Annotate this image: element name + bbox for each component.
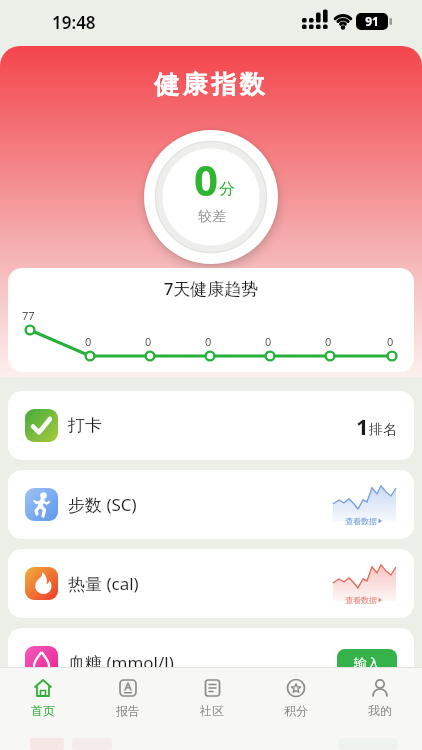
button[interactable]: 步数 (SC) xyxy=(8,470,414,539)
staticText: 0 xyxy=(145,334,152,349)
staticText: 19:48 xyxy=(52,11,96,34)
staticText: 打卡 xyxy=(68,415,102,436)
staticText: 查看数据 xyxy=(345,516,377,526)
button[interactable]: 输入 xyxy=(337,649,397,676)
staticText: 分 xyxy=(219,179,235,199)
staticText: 91 xyxy=(356,13,388,29)
button[interactable]: 热量 (cal) xyxy=(8,549,414,618)
staticText: 输入 xyxy=(354,655,380,671)
staticText: 排名 xyxy=(369,421,397,439)
staticText: 首页 xyxy=(31,703,55,718)
staticText: 0 xyxy=(387,334,394,349)
staticText: 报告 xyxy=(116,703,140,718)
staticText: 我的 xyxy=(368,703,392,718)
staticText: 0 xyxy=(265,334,272,349)
staticText: 0 xyxy=(85,334,92,349)
staticText: 健康指数 xyxy=(0,69,422,100)
staticText: 社区 xyxy=(200,703,224,718)
staticText: 0 xyxy=(194,151,219,208)
staticText: 7天健康趋势 xyxy=(8,277,414,300)
button[interactable]: 首页 xyxy=(0,677,85,718)
staticText: 积分 xyxy=(284,703,308,718)
button[interactable]: 我的 xyxy=(338,677,422,718)
staticText: 0 xyxy=(205,334,212,349)
button[interactable]: 社区 xyxy=(170,677,254,718)
button[interactable]: 报告 xyxy=(85,677,170,718)
staticText: 热量 (cal) xyxy=(68,572,139,595)
button[interactable]: 打卡 xyxy=(8,391,414,460)
staticText: 查看数据 xyxy=(345,595,377,605)
staticText: 血糖 (mmol/l) xyxy=(68,651,174,674)
button[interactable]: 积分 xyxy=(254,677,338,718)
staticText: 较差 xyxy=(198,208,226,226)
staticText: 1 xyxy=(356,411,369,441)
staticText: 步数 (SC) xyxy=(68,493,137,516)
staticText: 77 xyxy=(22,308,35,323)
button[interactable]: 血糖 (mmol/l) xyxy=(8,628,414,697)
staticText: 0 xyxy=(325,334,332,349)
